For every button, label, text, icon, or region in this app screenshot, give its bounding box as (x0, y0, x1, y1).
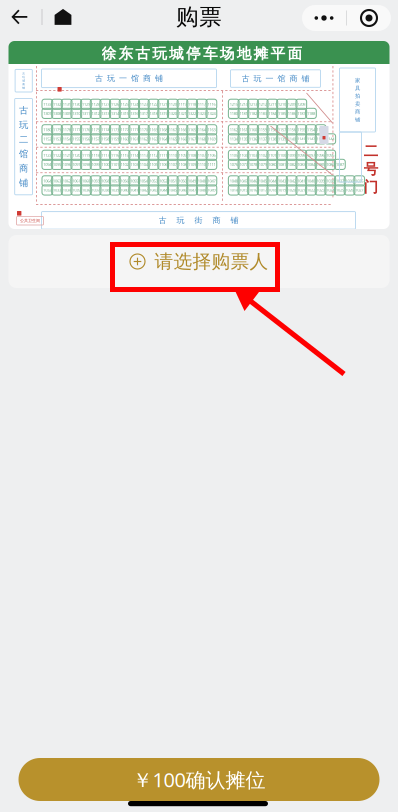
staticText: 1119 (178, 102, 186, 107)
staticText: 1058 (101, 178, 109, 183)
staticText: 1100 (278, 153, 286, 158)
staticText: 1308 (53, 111, 61, 116)
staticText: 1165 (188, 127, 196, 132)
staticText: 1046 (178, 187, 186, 193)
staticText: 1100 (101, 162, 109, 167)
staticText: 1103 (130, 162, 138, 167)
staticText: 1083 (297, 162, 305, 167)
staticText: 1163 (149, 136, 157, 141)
staticText: 1106 (207, 153, 215, 158)
button[interactable]: 返回 (3, 0, 36, 34)
staticText: 玩 (22, 75, 25, 79)
staticText: 1108 (178, 162, 186, 167)
staticText: 1024 (326, 187, 334, 193)
staticText: 1170 (140, 127, 148, 132)
staticText: 1311 (82, 111, 90, 116)
staticText: 1209 (288, 102, 296, 107)
staticText: 1168 (198, 136, 206, 141)
staticText: 1034 (63, 187, 71, 193)
staticText: 1112 (149, 153, 157, 158)
staticText: 二 (19, 134, 28, 145)
staticText: 1171 (130, 127, 138, 132)
staticText: 1164 (198, 127, 206, 132)
staticText: 具 (355, 85, 360, 91)
staticText: 1143 (317, 136, 325, 141)
staticText: 1183 (259, 111, 267, 116)
staticText: 1124 (130, 102, 138, 107)
staticText: 1020 (288, 187, 296, 193)
staticText: 1117 (198, 102, 206, 107)
staticText: 1099 (288, 153, 296, 158)
staticText: 1040 (307, 178, 315, 183)
staticText: 1319 (159, 111, 167, 116)
staticText: 1095 (326, 153, 334, 158)
staticText: 1118 (188, 102, 196, 107)
staticText: 1085 (317, 162, 325, 167)
staticText: 1180 (230, 111, 238, 116)
staticText: 1158 (101, 136, 109, 141)
staticText: 1044 (159, 187, 167, 193)
staticText: 1188 (307, 111, 315, 116)
staticText: 请选择购票人 (154, 250, 268, 273)
staticText: 1049 (188, 178, 196, 183)
staticText: 1036 (346, 178, 354, 183)
staticText: 1104 (239, 153, 247, 158)
staticText: ￥100确认摊位 (132, 766, 265, 793)
staticText: 1121 (159, 102, 167, 107)
button[interactable]: 请选择购票人 (8, 235, 389, 288)
staticText: 1016 (249, 187, 257, 193)
staticText: 1133 (43, 102, 51, 107)
staticText: 1310 (72, 111, 80, 116)
staticText: 1157 (92, 136, 100, 141)
staticText: 1321 (178, 111, 186, 116)
staticText: 1045 (259, 178, 267, 183)
staticText: 1079 (259, 162, 267, 167)
staticText: 1118 (92, 153, 100, 158)
staticText: 1137 (259, 136, 267, 141)
staticText: 1324 (207, 111, 215, 116)
staticText: 1040 (120, 187, 128, 193)
staticText: 1161 (239, 127, 247, 132)
staticText: 1162 (230, 127, 238, 132)
staticText: 1082 (288, 162, 296, 167)
staticText: 玩 (19, 119, 28, 131)
staticText: 1036 (82, 187, 90, 193)
button[interactable]: 首页 (46, 0, 80, 34)
button[interactable]: 更多 (302, 5, 391, 31)
staticText: 1186 (288, 111, 296, 116)
staticText: 1062 (63, 178, 71, 183)
staticText: 1051 (169, 178, 177, 183)
staticText: 1098 (82, 162, 90, 167)
staticText: 1049 (207, 187, 215, 193)
staticText: 1039 (317, 178, 325, 183)
staticText: 1109 (188, 162, 196, 167)
staticText: 1323 (198, 111, 206, 116)
staticText: 1023 (317, 187, 325, 193)
staticText: 1157 (278, 127, 286, 132)
staticText: 1181 (239, 111, 247, 116)
staticText: 1035 (72, 187, 80, 193)
staticText: 1154 (63, 136, 71, 141)
staticText: 1138 (268, 136, 276, 141)
staticText: 1210 (278, 102, 286, 107)
staticText: 1318 (149, 111, 157, 116)
staticText: 1314 (111, 111, 119, 116)
button[interactable]: ￥100确认摊位 (18, 758, 379, 801)
staticText: 1041 (130, 187, 138, 193)
staticText: 1042 (140, 187, 148, 193)
staticText: 1050 (178, 178, 186, 183)
staticText: 古 (22, 72, 25, 75)
staticText: 1059 (92, 178, 100, 183)
staticText: 1101 (268, 153, 276, 158)
staticText: 铺 (22, 86, 25, 89)
staticText: 1041 (297, 178, 305, 183)
staticText: 1014 (230, 187, 238, 193)
staticText: 1177 (72, 127, 80, 132)
staticText: 1182 (249, 111, 257, 116)
staticText: 1019 (278, 187, 286, 193)
staticText: 卖 (355, 101, 360, 107)
staticText: 1096 (63, 162, 71, 167)
staticText: 1163 (207, 127, 215, 132)
staticText: 1026 (346, 187, 354, 193)
staticText: 1172 (120, 127, 128, 132)
